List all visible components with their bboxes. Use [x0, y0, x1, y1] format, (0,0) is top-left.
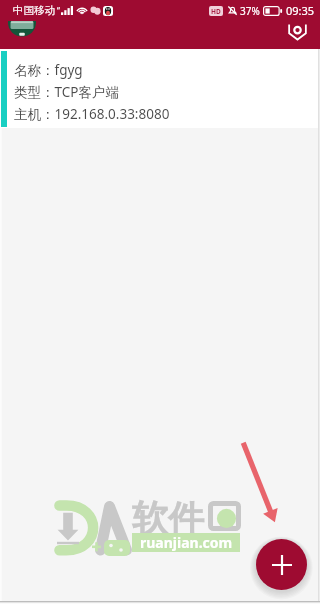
staticText: 中国移动	[13, 4, 55, 17]
button[interactable]: Add	[256, 539, 307, 590]
staticText: HD	[211, 7, 221, 16]
staticText: 软件	[132, 496, 204, 541]
staticText: 主机：192.168.0.33:8080	[14, 105, 170, 123]
staticText: 37%	[240, 4, 260, 18]
staticText: “	[57, 5, 60, 16]
button[interactable]: 名称：fgyg	[0, 49, 319, 128]
button[interactable]: Security shield	[285, 21, 309, 43]
staticText: 09:35	[286, 3, 315, 18]
staticText: 名称：fgyg	[14, 61, 83, 79]
staticText: 类型：TCP客户端	[14, 83, 119, 101]
button[interactable]: App icon	[8, 21, 36, 40]
staticText: ruanjian.com	[140, 533, 233, 552]
